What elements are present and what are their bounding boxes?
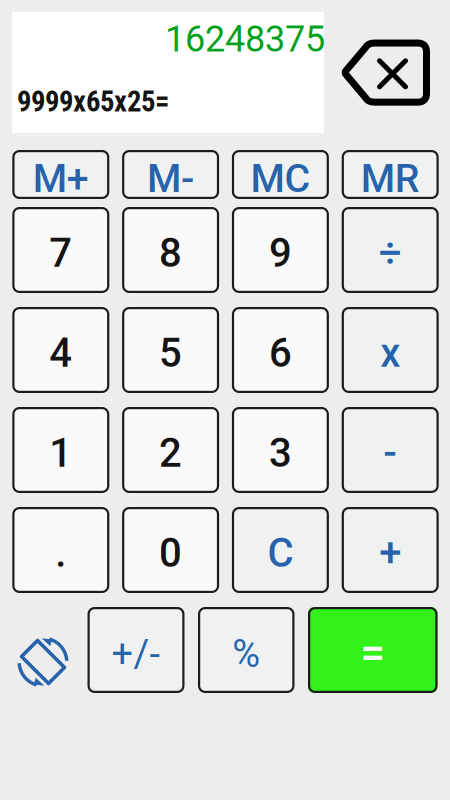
staticText: 6 xyxy=(269,330,292,376)
staticText: 4 xyxy=(49,330,72,376)
staticText: 1 xyxy=(49,430,72,476)
button[interactable]: M+ xyxy=(12,150,109,199)
staticText: 3 xyxy=(269,430,292,476)
staticText: 8 xyxy=(159,230,182,276)
button[interactable]: C xyxy=(232,507,329,593)
button[interactable]: Delete xyxy=(341,39,431,107)
staticText: +/- xyxy=(111,632,160,676)
staticText: 7 xyxy=(49,230,72,276)
button[interactable]: 0 xyxy=(122,507,219,593)
button[interactable]: +/- xyxy=(87,607,184,693)
staticText: MC xyxy=(250,155,310,202)
button[interactable]: MC xyxy=(232,150,329,199)
staticText: ÷ xyxy=(379,230,402,276)
staticText: % xyxy=(232,632,260,676)
staticText: M+ xyxy=(33,155,89,202)
button[interactable]: M- xyxy=(122,150,219,199)
button[interactable]: 4 xyxy=(12,307,109,393)
staticText: C xyxy=(267,530,293,576)
button[interactable]: 2 xyxy=(122,407,219,493)
staticText: 9999x65x25= xyxy=(17,85,169,119)
staticText: 5 xyxy=(159,330,182,376)
button[interactable]: 1 xyxy=(12,407,109,493)
button[interactable]: Rotate screen xyxy=(15,634,71,690)
button[interactable]: 7 xyxy=(12,207,109,293)
staticText: x xyxy=(380,330,400,376)
button[interactable]: + xyxy=(342,507,439,593)
button[interactable]: ÷ xyxy=(342,207,439,293)
button[interactable]: 9 xyxy=(232,207,329,293)
staticText: M- xyxy=(147,155,194,202)
button[interactable]: = xyxy=(308,607,437,693)
staticText: 9 xyxy=(269,230,292,276)
staticText: 16248375 xyxy=(165,18,325,60)
button[interactable]: MR xyxy=(342,150,439,199)
button[interactable]: % xyxy=(198,607,294,693)
staticText: MR xyxy=(361,155,420,202)
staticText: - xyxy=(383,430,397,476)
button[interactable]: 5 xyxy=(122,307,219,393)
staticText: = xyxy=(360,627,385,679)
button[interactable]: x xyxy=(342,307,439,393)
button[interactable]: 6 xyxy=(232,307,329,393)
button[interactable]: . xyxy=(12,507,109,593)
staticText: 0 xyxy=(159,530,182,576)
button[interactable]: 8 xyxy=(122,207,219,293)
staticText: . xyxy=(55,530,66,576)
staticText: + xyxy=(379,530,401,576)
staticText: 2 xyxy=(159,430,182,476)
button[interactable]: 3 xyxy=(232,407,329,493)
button[interactable]: - xyxy=(342,407,439,493)
